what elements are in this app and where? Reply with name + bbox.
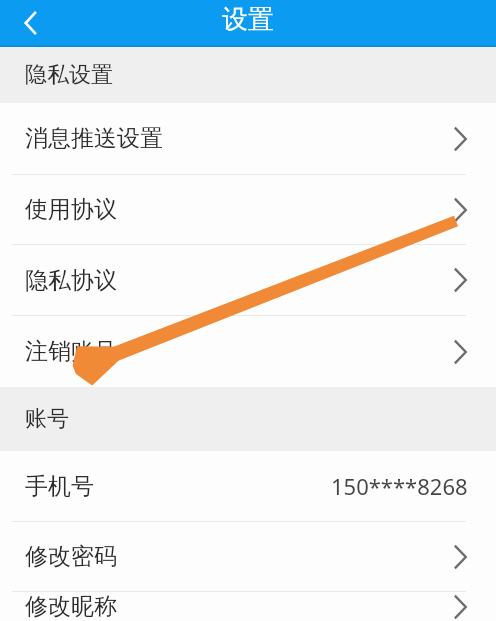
button[interactable]: Back xyxy=(14,6,48,40)
button[interactable]: 修改昵称 xyxy=(0,592,496,621)
button[interactable]: 使用协议 xyxy=(0,175,496,244)
staticText: 注销账号 xyxy=(25,337,117,366)
button[interactable]: 修改密码 xyxy=(0,522,496,591)
staticText: 手机号 xyxy=(25,472,94,501)
staticText: 隐私设置 xyxy=(25,61,113,89)
staticText: 修改昵称 xyxy=(25,592,117,621)
staticText: 隐私协议 xyxy=(25,266,117,295)
button[interactable]: 手机号 xyxy=(0,451,496,521)
button[interactable]: 消息推送设置 xyxy=(0,103,496,174)
button[interactable]: 注销账号 xyxy=(0,316,496,387)
staticText: 修改密码 xyxy=(25,542,117,571)
staticText: 设置 xyxy=(222,3,274,36)
staticText: 150****8268 xyxy=(331,471,468,501)
staticText: 账号 xyxy=(25,405,69,433)
staticText: 消息推送设置 xyxy=(25,124,163,153)
button[interactable]: 隐私协议 xyxy=(0,245,496,315)
staticText: 使用协议 xyxy=(25,195,117,224)
